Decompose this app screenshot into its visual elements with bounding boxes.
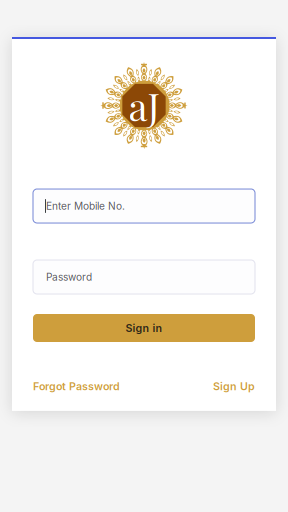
staticText: Forgot Password — [33, 380, 120, 393]
button[interactable]: Password — [33, 260, 255, 294]
button[interactable]: Sign Up — [213, 380, 255, 393]
staticText: Enter Mobile No. — [46, 200, 125, 212]
staticText: Sign in — [125, 321, 162, 334]
button[interactable]: Sign in — [33, 314, 255, 342]
staticText: aJ — [128, 80, 159, 131]
staticText: Password — [46, 271, 92, 283]
button[interactable]: Enter Mobile No. — [33, 189, 255, 223]
staticText: Sign Up — [213, 380, 255, 393]
button[interactable]: Forgot Password — [33, 380, 120, 393]
